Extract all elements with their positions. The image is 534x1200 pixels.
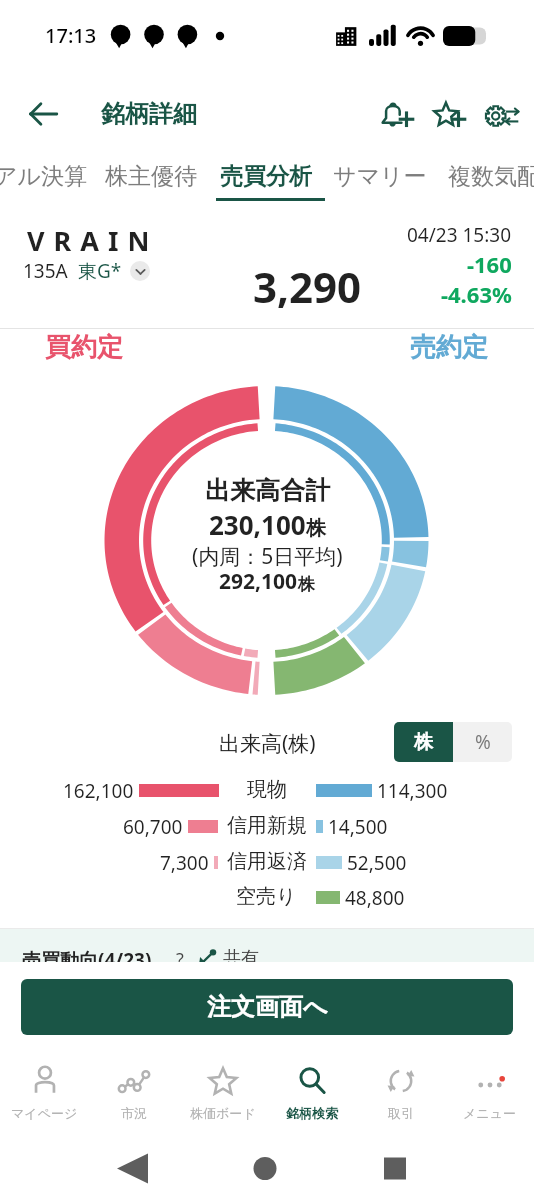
button[interactable]: Help [169, 947, 191, 962]
staticText: ? [176, 947, 184, 962]
button[interactable]: 注文画面へ [21, 979, 513, 1035]
button[interactable]: Show more [130, 261, 150, 281]
staticText: 48,800 [345, 885, 405, 911]
button[interactable]: 売買分析 [209, 150, 323, 202]
staticText: アル決算 [0, 162, 88, 191]
button[interactable]: 取引 [356, 1044, 445, 1140]
staticText: 17:13 [45, 22, 97, 49]
staticText: 売買動向(4/23) [22, 947, 152, 962]
staticText: 230,100 [209, 507, 306, 542]
staticText: サマリー [333, 162, 427, 191]
button[interactable]: メニュー [445, 1044, 534, 1140]
button[interactable]: 株価ボード [178, 1044, 267, 1140]
staticText: 現物 [247, 777, 287, 802]
staticText: 135A [23, 258, 68, 284]
staticText: 株価ボード [190, 1105, 256, 1121]
staticText: 株 [298, 574, 315, 595]
staticText: 株主優待 [105, 162, 197, 191]
staticText: 複数気配 [448, 162, 534, 191]
button[interactable]: アル決算 [0, 150, 98, 202]
staticText: 銘柄検索 [286, 1105, 338, 1121]
staticText: 04/23 15:30 [407, 222, 512, 248]
staticText: 売約定 [410, 331, 488, 364]
staticText: 162,100 [63, 778, 134, 804]
staticText: 信用返済 [227, 849, 307, 874]
button[interactable]: サマリー [323, 150, 437, 202]
button[interactable]: 株 [394, 722, 453, 762]
staticText: 7,300 [160, 850, 209, 876]
button[interactable]: Add price alert [372, 90, 424, 142]
button[interactable]: Settings [476, 90, 528, 142]
staticText: 出来高(株) [219, 729, 316, 758]
staticText: 14,500 [328, 814, 388, 840]
staticText: 東G* [78, 258, 122, 284]
button[interactable]: Back [12, 82, 74, 146]
staticText: 売買分析 [220, 162, 312, 191]
button[interactable]: Add to favorites [424, 90, 476, 142]
staticText: 292,100 [219, 567, 298, 596]
staticText: 株 [306, 516, 326, 541]
button[interactable]: 銘柄検索 [267, 1044, 356, 1140]
staticText: 114,300 [377, 778, 448, 804]
staticText: 60,700 [123, 814, 183, 840]
staticText: 信用新規 [227, 813, 307, 838]
button[interactable]: 市況 [89, 1044, 178, 1140]
staticText: -4.63% [441, 279, 512, 309]
staticText: 共有 [223, 947, 259, 962]
button[interactable]: % [453, 722, 512, 762]
staticText: メニュー [463, 1105, 516, 1121]
button[interactable]: 複数気配 [437, 150, 534, 202]
staticText: (内周：5日平均) [192, 542, 343, 571]
button[interactable]: 株主優待 [94, 150, 208, 202]
staticText: 取引 [388, 1105, 414, 1121]
staticText: 市況 [121, 1105, 147, 1121]
staticText: -160 [467, 249, 512, 279]
staticText: 52,500 [347, 850, 407, 876]
button[interactable]: マイページ [0, 1044, 89, 1140]
staticText: 銘柄詳細 [101, 99, 197, 129]
staticText: VRAIN [27, 222, 159, 259]
button[interactable]: 共有 [198, 947, 259, 962]
staticText: 3,290 [253, 258, 362, 315]
staticText: 買約定 [45, 331, 123, 364]
staticText: 注文画面へ [207, 992, 328, 1022]
staticText: 出来高合計 [205, 475, 330, 506]
staticText: マイページ [11, 1105, 78, 1121]
staticText: % [475, 729, 491, 755]
staticText: 株 [414, 730, 433, 754]
staticText: 空売り [236, 884, 297, 909]
